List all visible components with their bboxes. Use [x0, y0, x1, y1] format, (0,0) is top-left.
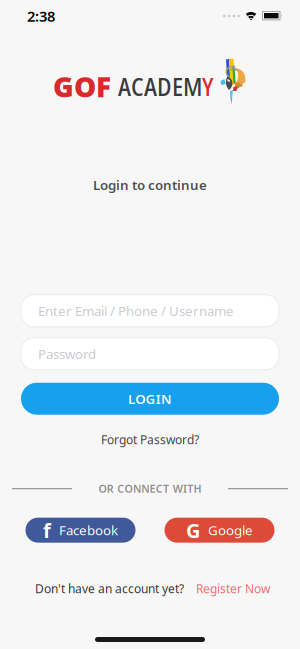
staticText: Register Now — [196, 581, 270, 596]
button[interactable]: Password — [0, 338, 300, 370]
staticText: GOF — [53, 68, 111, 105]
staticText: Y — [202, 70, 213, 103]
staticText: LOGIN — [128, 390, 172, 408]
staticText: Enter Email / Phone / Username — [38, 302, 234, 320]
button[interactable]: Enter Email / Phone / Username — [0, 295, 300, 327]
staticText: f — [43, 517, 51, 543]
staticText: OR CONNECT WITH — [98, 482, 202, 496]
staticText: ACADEM — [118, 70, 202, 103]
staticText: Forgot Password? — [101, 432, 199, 448]
button[interactable]: G — [164, 518, 274, 543]
staticText: Login to continue — [93, 176, 207, 194]
button[interactable]: Forgot Password? — [101, 432, 199, 448]
staticText: Google — [208, 521, 253, 539]
button[interactable]: LOGIN — [0, 383, 300, 415]
button[interactable]: f — [25, 518, 135, 543]
staticText: Don't have an account yet? — [35, 581, 184, 596]
button[interactable]: Register Now — [196, 581, 270, 596]
staticText: Facebook — [59, 521, 118, 539]
staticText: 2:38 — [27, 6, 55, 26]
staticText: G — [186, 517, 200, 543]
staticText: Password — [38, 345, 96, 363]
